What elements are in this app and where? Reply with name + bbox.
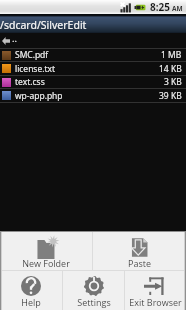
staticText: New Folder bbox=[22, 257, 70, 268]
button[interactable]: license.txt bbox=[0, 62, 186, 75]
staticText: Exit Browser bbox=[129, 296, 182, 308]
button[interactable]: Paste bbox=[93, 232, 186, 270]
staticText: Help bbox=[21, 296, 41, 308]
staticText: 14 KB bbox=[159, 63, 182, 75]
staticText: 8:25 bbox=[150, 0, 170, 14]
staticText: 39 KB bbox=[159, 90, 182, 102]
staticText: 3 KB bbox=[164, 76, 182, 88]
staticText: license.txt bbox=[15, 63, 159, 75]
button[interactable]: Settings bbox=[63, 271, 124, 310]
button[interactable]: wp-app.php bbox=[0, 89, 186, 102]
staticText: .. bbox=[12, 32, 17, 45]
staticText: Settings bbox=[77, 296, 111, 308]
staticText: SMC.pdf bbox=[15, 49, 161, 61]
staticText: wp-app.php bbox=[15, 90, 159, 102]
button[interactable]: SMC.pdf bbox=[0, 49, 186, 61]
button[interactable]: .. bbox=[0, 33, 186, 48]
staticText: AM bbox=[172, 4, 183, 13]
button[interactable]: text.css bbox=[0, 76, 186, 88]
staticText: text.css bbox=[15, 76, 164, 88]
staticText: 1 MB bbox=[161, 49, 182, 61]
button[interactable]: Help bbox=[0, 271, 62, 310]
staticText: Paste bbox=[128, 257, 151, 269]
button[interactable]: New Folder bbox=[0, 232, 92, 270]
staticText: /sdcard/SilverEdit bbox=[0, 18, 87, 32]
button[interactable]: Exit Browser bbox=[125, 271, 186, 310]
